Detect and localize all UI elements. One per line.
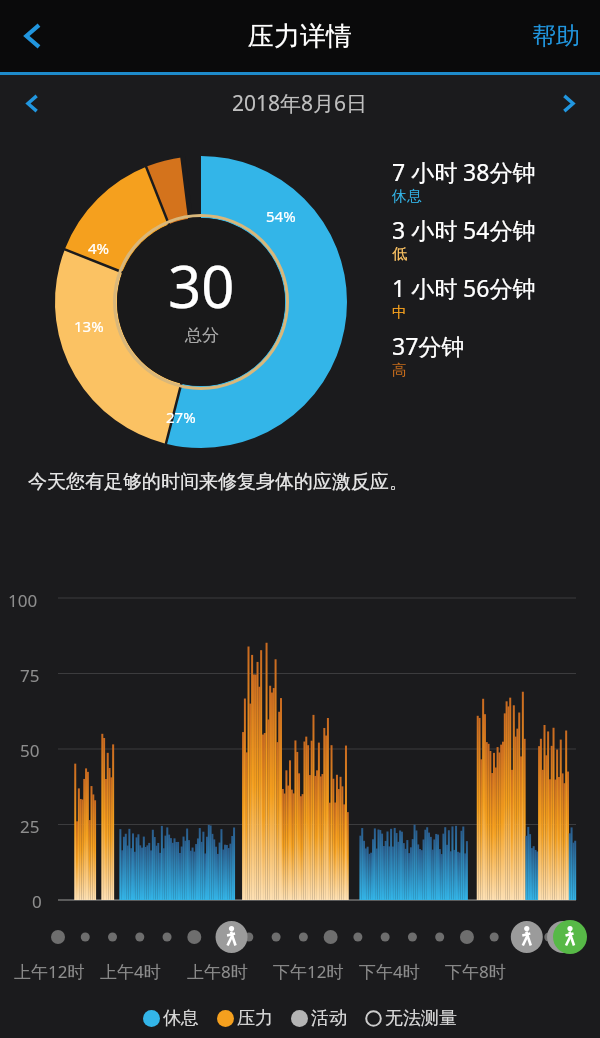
button[interactable]: 压力 [217, 1007, 273, 1030]
staticText: 无法测量 [385, 1007, 457, 1030]
button[interactable]: 休息 [143, 1007, 199, 1030]
staticText: 30 [168, 246, 235, 325]
staticText: 休息 [163, 1007, 199, 1030]
staticText: 下午12时 [273, 960, 344, 983]
staticText: 50 [20, 739, 40, 762]
staticText: 上午4时 [100, 960, 161, 983]
button[interactable]: Next day [536, 75, 600, 131]
staticText: 2018年8月6日 [232, 89, 368, 118]
staticText: 7 小时 38分钟 [392, 156, 536, 187]
staticText: 总分 [185, 325, 219, 346]
staticText: 活动 [311, 1007, 347, 1030]
staticText: 帮助 [532, 21, 580, 51]
staticText: 今天您有足够的时间来修复身体的应激反应。 [28, 470, 408, 494]
staticText: 0 [32, 890, 42, 913]
staticText: 休息 [392, 187, 422, 206]
staticText: 高 [392, 361, 407, 380]
staticText: 3 小时 54分钟 [392, 214, 536, 245]
button[interactable]: 活动 [291, 1007, 347, 1030]
staticText: 75 [20, 664, 40, 687]
staticText: 27% [166, 407, 196, 427]
staticText: 37分钟 [392, 330, 465, 361]
staticText: 压力 [237, 1007, 273, 1030]
button[interactable]: Previous day [0, 75, 64, 131]
button[interactable]: 帮助 [512, 0, 600, 72]
button[interactable]: Back [0, 0, 66, 72]
staticText: 1 小时 56分钟 [392, 272, 536, 303]
staticText: 压力详情 [248, 20, 352, 53]
staticText: 13% [74, 316, 104, 336]
staticText: 下午4时 [359, 960, 420, 983]
staticText: 上午12时 [14, 960, 85, 983]
staticText: 上午8时 [187, 960, 248, 983]
staticText: 54% [266, 206, 296, 226]
staticText: 下午8时 [445, 960, 506, 983]
staticText: 25 [20, 815, 40, 838]
staticText: 低 [392, 245, 407, 264]
button[interactable]: 无法测量 [365, 1007, 457, 1030]
staticText: 4% [88, 238, 110, 258]
staticText: 100 [8, 589, 38, 612]
staticText: 中 [392, 303, 407, 322]
